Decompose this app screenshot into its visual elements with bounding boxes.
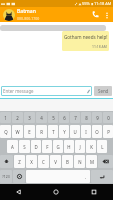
- staticText: 2: [16, 115, 19, 121]
- staticText: Y: [63, 129, 66, 135]
- button[interactable]: I: [81, 125, 91, 138]
- button[interactable]: 6: [59, 112, 69, 123]
- button[interactable]: T: [48, 125, 58, 138]
- button[interactable]: Backspace: [98, 155, 113, 168]
- button[interactable]: B: [62, 155, 73, 168]
- button[interactable]: G: [53, 140, 63, 153]
- button[interactable]: Recent apps: [75, 184, 113, 200]
- button[interactable]: S: [19, 140, 30, 153]
- button[interactable]: ?123: [0, 170, 12, 183]
- button[interactable]: 1: [0, 112, 11, 123]
- staticText: 080-800-1700: [17, 16, 40, 21]
- staticText: O: [95, 129, 99, 135]
- staticText: F: [46, 144, 49, 150]
- button[interactable]: F: [42, 140, 52, 153]
- staticText: Gotham needs help!: [64, 34, 108, 40]
- staticText: Send: [98, 88, 109, 94]
- staticText: 7: [74, 115, 77, 121]
- button[interactable]: U: [70, 125, 80, 138]
- button[interactable]: 8: [81, 112, 91, 123]
- button[interactable]: W: [12, 125, 23, 138]
- button[interactable]: V: [50, 155, 61, 168]
- button[interactable]: Call: [89, 8, 102, 21]
- staticText: P: [107, 129, 110, 135]
- button[interactable]: A: [7, 140, 18, 153]
- staticText: 11:18 AM: [92, 44, 107, 49]
- staticText: B: [66, 159, 69, 165]
- button[interactable]: 5: [48, 112, 58, 123]
- staticText: J: [79, 144, 81, 150]
- button[interactable]: 2: [12, 112, 23, 123]
- staticText: L: [101, 144, 104, 150]
- staticText: K: [90, 144, 93, 150]
- button[interactable]: L: [97, 140, 107, 153]
- button[interactable]: Q: [0, 125, 11, 138]
- staticText: 3: [28, 115, 31, 121]
- staticText: Batman: [17, 8, 36, 15]
- button[interactable]: P: [103, 125, 113, 138]
- button[interactable]: 7: [70, 112, 80, 123]
- button[interactable]: Enter: [91, 170, 113, 183]
- button[interactable]: M: [86, 155, 97, 168]
- staticText: 55%: [82, 1, 90, 6]
- staticText: H: [67, 144, 71, 150]
- button[interactable]: R: [36, 125, 47, 138]
- staticText: 8: [85, 115, 88, 121]
- staticText: N: [78, 159, 82, 165]
- staticText: R: [40, 129, 43, 135]
- staticText: 6: [63, 115, 66, 121]
- staticText: W: [15, 129, 20, 135]
- button[interactable]: E: [24, 125, 35, 138]
- staticText: U: [73, 129, 77, 135]
- button[interactable]: N: [74, 155, 85, 168]
- staticText: T: [52, 129, 55, 135]
- button[interactable]: C: [38, 155, 49, 168]
- staticText: G: [56, 144, 60, 150]
- staticText: V: [54, 159, 57, 165]
- staticText: X: [30, 159, 33, 165]
- staticText: M: [90, 159, 94, 165]
- staticText: .: [85, 174, 87, 180]
- button[interactable]: X: [26, 155, 37, 168]
- staticText: ?123: [2, 174, 10, 179]
- button[interactable]: 4: [36, 112, 47, 123]
- staticText: Z: [18, 159, 21, 165]
- button[interactable]: More options: [102, 10, 112, 20]
- button[interactable]: Shift: [0, 155, 13, 168]
- staticText: A: [11, 144, 14, 150]
- staticText: 1: [4, 115, 7, 121]
- staticText: Q: [4, 129, 8, 135]
- staticText: Enter message: [3, 88, 86, 94]
- staticText: D: [34, 144, 38, 150]
- button[interactable]: 0: [103, 112, 113, 123]
- button[interactable]: D: [31, 140, 41, 153]
- button[interactable]: Gotham needs help!: [62, 31, 109, 51]
- staticText: I: [85, 129, 87, 135]
- button[interactable]: 9: [92, 112, 102, 123]
- button[interactable]: J: [75, 140, 85, 153]
- staticText: 0: [107, 115, 110, 121]
- staticText: 4: [40, 115, 43, 121]
- button[interactable]: Back: [0, 184, 37, 200]
- staticText: E: [28, 129, 31, 135]
- button[interactable]: O: [92, 125, 102, 138]
- staticText: 5: [52, 115, 55, 121]
- button[interactable]: Enter message: [3, 86, 91, 96]
- button[interactable]: H: [64, 140, 74, 153]
- button[interactable]: Y: [59, 125, 69, 138]
- staticText: S: [23, 144, 26, 150]
- staticText: 9: [96, 115, 99, 121]
- button[interactable]: Home: [37, 184, 75, 200]
- staticText: C: [42, 159, 45, 165]
- button[interactable]: Settings: [13, 170, 25, 183]
- button[interactable]: Z: [14, 155, 25, 168]
- button[interactable]: K: [86, 140, 96, 153]
- button[interactable]: Send: [94, 86, 112, 96]
- button[interactable]: 3: [24, 112, 35, 123]
- staticText: 11:18 AM: [94, 1, 112, 6]
